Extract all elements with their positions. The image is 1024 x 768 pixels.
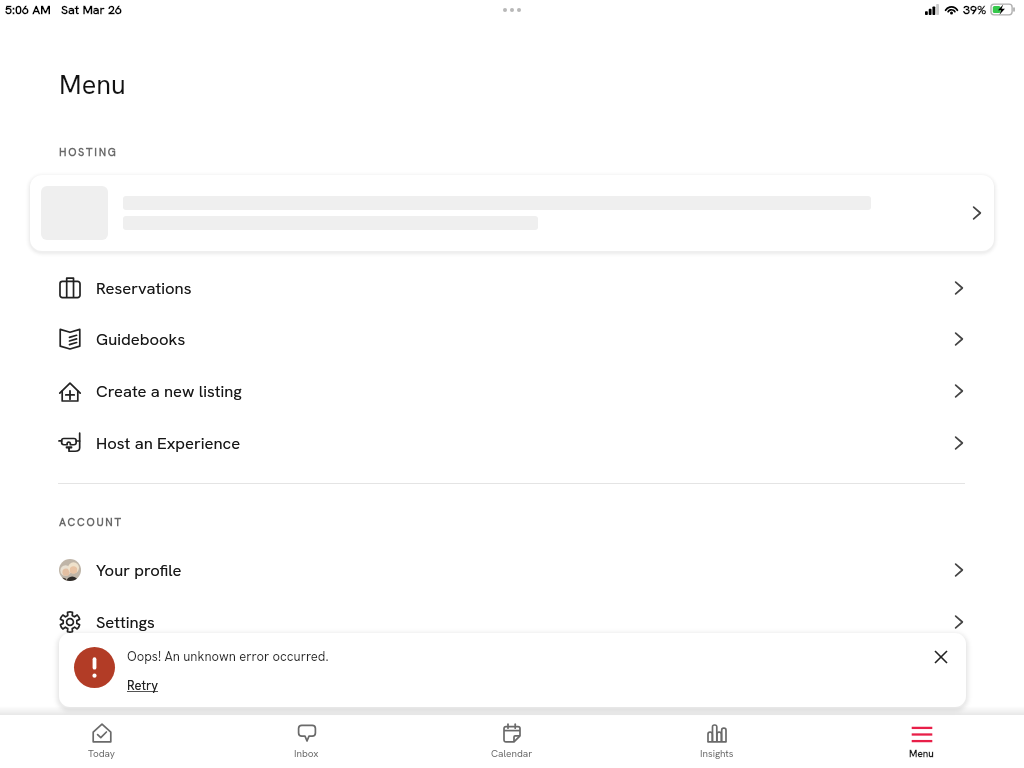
button[interactable]: Inbox — [204, 715, 409, 768]
button[interactable]: Guidebooks — [0, 314, 1024, 364]
button[interactable] — [30, 175, 994, 251]
staticText: Today — [88, 747, 116, 760]
staticText: Your profile — [96, 559, 182, 581]
staticText: Menu — [909, 747, 934, 760]
button[interactable]: Create a new listing — [0, 366, 1024, 416]
button[interactable]: Menu — [819, 715, 1024, 768]
button[interactable]: Your profile — [0, 545, 1024, 595]
staticText: ACCOUNT — [59, 515, 123, 529]
button[interactable]: Retry — [127, 677, 159, 694]
staticText: Host an Experience — [96, 432, 241, 454]
staticText: HOSTING — [59, 145, 118, 159]
staticText: Sat Mar 26 — [61, 1, 122, 17]
staticText: Create a new listing — [96, 380, 242, 402]
staticText: Inbox — [294, 747, 319, 760]
button[interactable]: Today — [0, 715, 204, 768]
button[interactable]: Calendar — [409, 715, 614, 768]
staticText: Retry — [127, 677, 159, 694]
staticText: Reservations — [96, 277, 192, 299]
staticText: Reservations — [96, 277, 192, 299]
button[interactable]: Dismiss — [925, 641, 957, 673]
staticText: Retry — [127, 677, 159, 694]
staticText: Oops! An unknown error occurred. — [127, 648, 329, 665]
button[interactable]: Reservations — [0, 263, 1024, 313]
staticText: 5:06 AM — [5, 1, 51, 17]
staticText: Guidebooks — [96, 328, 186, 350]
staticText: Calendar — [491, 747, 533, 760]
staticText: Guidebooks — [96, 328, 186, 350]
staticText: 39% — [963, 1, 987, 17]
staticText: Your profile — [96, 559, 182, 581]
button[interactable]: Settings — [0, 597, 1024, 647]
button[interactable]: Host an Experience — [0, 418, 1024, 468]
staticText: Settings — [96, 611, 155, 633]
staticText: Host an Experience — [96, 432, 241, 454]
button[interactable]: Insights — [614, 715, 819, 768]
staticText: Insights — [700, 747, 734, 760]
staticText: Settings — [96, 611, 155, 633]
staticText: Menu — [59, 67, 126, 102]
staticText: Create a new listing — [96, 380, 242, 402]
